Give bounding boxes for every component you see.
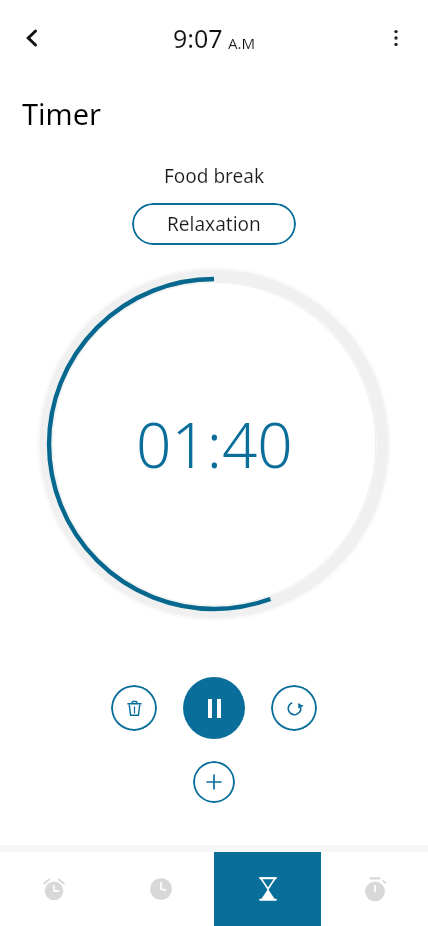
button[interactable]: More options: [372, 14, 420, 62]
staticText: A.M: [228, 33, 256, 53]
staticText: 01:40: [136, 402, 293, 486]
button[interactable]: Add timer: [193, 761, 235, 803]
staticText: Relaxation: [167, 211, 261, 237]
staticText: Food break: [0, 163, 428, 189]
button[interactable]: Timer: [214, 852, 321, 926]
button[interactable]: Alarm: [0, 852, 107, 926]
staticText: 9:07: [173, 21, 223, 55]
button[interactable]: Restart timer: [271, 685, 317, 731]
staticText: Timer: [22, 94, 102, 133]
button[interactable]: Delete timer: [111, 685, 157, 731]
button[interactable]: Relaxation: [132, 203, 296, 245]
button[interactable]: Pause: [183, 677, 245, 739]
button[interactable]: Back: [8, 14, 56, 62]
button[interactable]: Stopwatch: [321, 852, 428, 926]
button[interactable]: World clock: [107, 852, 214, 926]
